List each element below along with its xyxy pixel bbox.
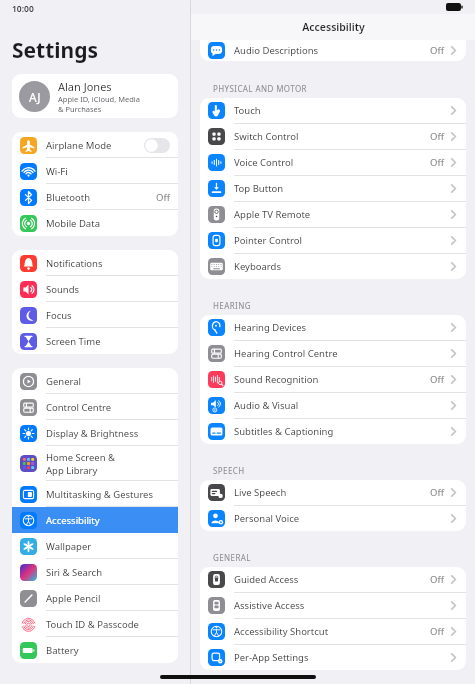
button[interactable]: Screen Time xyxy=(12,328,178,354)
staticText: Wallpaper xyxy=(46,540,92,553)
button[interactable]: Audio & Visual xyxy=(200,393,466,418)
staticText: Multitasking & Gestures xyxy=(46,488,154,501)
staticText: Airplane Mode xyxy=(46,139,112,152)
button[interactable]: Home Screen & xyxy=(12,446,178,481)
staticText: Off xyxy=(430,486,444,499)
button[interactable]: Voice Control xyxy=(200,150,466,175)
staticText: Keyboards xyxy=(234,260,449,273)
staticText: Subtitles & Captioning xyxy=(234,425,449,438)
button[interactable]: Apple Pencil xyxy=(12,585,178,611)
button[interactable]: Assistive Access xyxy=(200,593,466,618)
staticText: Personal Voice xyxy=(234,512,449,525)
button[interactable]: Wi-Fi xyxy=(12,158,178,184)
staticText: Battery xyxy=(46,644,79,657)
staticText: GENERAL xyxy=(213,552,251,563)
staticText: Audio Descriptions xyxy=(234,44,430,57)
button[interactable]: Notifications xyxy=(12,250,178,276)
staticText: Screen Time xyxy=(46,335,101,348)
button[interactable]: Guided Access xyxy=(200,567,466,592)
button[interactable]: AJ xyxy=(12,74,178,118)
staticText: HEARING xyxy=(213,300,251,311)
button[interactable]: Battery xyxy=(12,637,178,663)
staticText: Sounds xyxy=(46,283,80,296)
staticText: Audio & Visual xyxy=(234,399,449,412)
staticText: Off xyxy=(430,573,444,586)
staticText: Bluetooth xyxy=(46,191,91,204)
button[interactable]: Focus xyxy=(12,302,178,328)
button[interactable]: Sounds xyxy=(12,276,178,302)
button[interactable]: Subtitles & Captioning xyxy=(200,419,466,444)
button[interactable]: Accessibility Shortcut xyxy=(200,619,466,644)
staticText: Control Centre xyxy=(46,401,112,414)
button[interactable]: Hearing Control Centre xyxy=(200,341,466,366)
button[interactable]: Live Speech xyxy=(200,480,466,505)
button[interactable]: Mobile Data xyxy=(12,210,178,236)
staticText: 10:00 xyxy=(12,3,34,15)
staticText: Voice Control xyxy=(234,156,430,169)
staticText: Notifications xyxy=(46,257,103,270)
staticText: Wi-Fi xyxy=(46,165,68,178)
button[interactable]: General xyxy=(12,368,178,394)
button[interactable]: Wallpaper xyxy=(12,533,178,559)
button[interactable]: Switch Control xyxy=(200,124,466,149)
staticText: Per-App Settings xyxy=(234,651,449,664)
staticText: & Purchases xyxy=(58,104,102,114)
button[interactable]: Control Centre xyxy=(12,394,178,420)
button[interactable]: Accessibility xyxy=(12,507,178,533)
button[interactable]: Top Button xyxy=(200,176,466,201)
staticText: AJ xyxy=(29,89,41,105)
staticText: Touch xyxy=(234,104,449,117)
staticText: Apple TV Remote xyxy=(234,208,449,221)
staticText: Touch ID & Passcode xyxy=(46,618,139,631)
button[interactable]: Hearing Devices xyxy=(200,315,466,340)
staticText: Apple Pencil xyxy=(46,592,101,605)
button[interactable]: Touch xyxy=(200,98,466,123)
button[interactable]: Personal Voice xyxy=(200,506,466,531)
staticText: Hearing Devices xyxy=(234,321,449,334)
button[interactable]: Display & Brightness xyxy=(12,420,178,446)
button[interactable]: Siri & Search xyxy=(12,559,178,585)
staticText: Live Speech xyxy=(234,486,430,499)
button[interactable]: Audio Descriptions xyxy=(200,40,466,61)
staticText: Assistive Access xyxy=(234,599,449,612)
staticText: App Library xyxy=(46,464,98,477)
button[interactable]: Keyboards xyxy=(200,254,466,279)
staticText: Accessibility xyxy=(302,20,365,34)
staticText: Mobile Data xyxy=(46,217,100,230)
staticText: Focus xyxy=(46,309,72,322)
staticText: Off xyxy=(430,373,444,386)
staticText: Hearing Control Centre xyxy=(234,347,449,360)
button[interactable]: Apple TV Remote xyxy=(200,202,466,227)
staticText: Display & Brightness xyxy=(46,427,139,440)
staticText: Apple ID, iCloud, Media xyxy=(58,94,140,104)
staticText: General xyxy=(46,375,82,388)
button[interactable]: Airplane Mode xyxy=(12,132,178,158)
staticText: Accessibility Shortcut xyxy=(234,625,430,638)
staticText: Top Button xyxy=(234,182,449,195)
staticText: Off xyxy=(430,130,444,143)
staticText: Guided Access xyxy=(234,573,430,586)
staticText: SPEECH xyxy=(213,465,245,476)
button[interactable]: Per-App Settings xyxy=(200,645,466,670)
staticText: Alan Jones xyxy=(58,79,112,94)
staticText: Sound Recognition xyxy=(234,373,430,386)
button[interactable]: Multitasking & Gestures xyxy=(12,481,178,507)
staticText: Home Screen & xyxy=(46,451,116,464)
staticText: Off xyxy=(156,191,170,204)
staticText: Pointer Control xyxy=(234,234,449,247)
staticText: Off xyxy=(430,156,444,169)
button[interactable]: Bluetooth xyxy=(12,184,178,210)
button[interactable]: Touch ID & Passcode xyxy=(12,611,178,637)
button[interactable]: Sound Recognition xyxy=(200,367,466,392)
staticText: Accessibility xyxy=(46,514,100,527)
staticText: Off xyxy=(430,44,444,57)
staticText: Siri & Search xyxy=(46,566,103,579)
staticText: Off xyxy=(430,625,444,638)
staticText: Switch Control xyxy=(234,130,430,143)
staticText: PHYSICAL AND MOTOR xyxy=(213,83,307,94)
staticText: Settings xyxy=(12,36,99,65)
button[interactable]: Pointer Control xyxy=(200,228,466,253)
